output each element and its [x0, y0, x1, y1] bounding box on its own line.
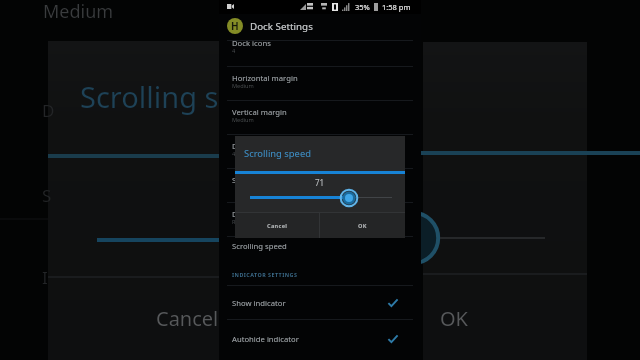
staticText: D: [42, 99, 55, 122]
staticText: INDICATOR SETTINGS: [232, 271, 298, 278]
staticText: Medium: [232, 116, 254, 124]
button[interactable]: Dock opacity: [219, 141, 421, 165]
staticText: Medium: [43, 0, 114, 24]
staticText: 45: [232, 150, 239, 158]
staticText: 71: [315, 177, 325, 188]
staticText: Show indicator: [232, 298, 286, 308]
button[interactable]: H: [219, 14, 421, 38]
button[interactable]: Show indicator: [219, 294, 421, 312]
staticText: Dock position: [232, 209, 282, 219]
button[interactable]: Cancel: [235, 213, 319, 238]
button[interactable]: Dock position: [219, 209, 421, 233]
other: Enabled: [388, 335, 398, 343]
staticText: H: [231, 19, 239, 33]
staticText: Right: [232, 218, 246, 226]
button[interactable]: Vertical margin: [219, 107, 421, 131]
staticText: Autohide indicator: [232, 334, 299, 344]
staticText: Scrolling speed: [244, 147, 311, 160]
button[interactable]: Horizontal margin: [219, 73, 421, 97]
staticText: OK: [358, 222, 367, 230]
staticText: Scrolling speed: [232, 241, 287, 251]
staticText: Medium: [232, 82, 254, 90]
other: Enabled: [388, 299, 398, 307]
button[interactable]: Scrolling speed: [219, 241, 421, 255]
staticText: Scrolling speed: [232, 175, 287, 185]
button[interactable]: Scrolling speed: [219, 175, 421, 189]
staticText: Cancel: [267, 222, 288, 230]
staticText: Vertical margin: [232, 107, 287, 117]
button[interactable]: Dock icons: [219, 38, 421, 62]
staticText: Horizontal margin: [232, 73, 298, 83]
button[interactable]: OK: [320, 213, 405, 238]
staticText: S: [42, 184, 52, 207]
staticText: 1:58 pm: [382, 2, 411, 12]
staticText: Scrolling s: [80, 77, 219, 116]
staticText: Dock opacity: [232, 141, 279, 151]
staticText: 35%: [355, 2, 370, 12]
staticText: OK: [440, 305, 468, 332]
staticText: Cancel: [156, 305, 219, 332]
staticText: pm: [398, 1, 416, 16]
staticText: Dock icons: [232, 38, 271, 48]
staticText: Dock Settings: [250, 20, 313, 33]
staticText: I: [42, 266, 48, 289]
staticText: 4: [232, 47, 236, 55]
button[interactable]: Autohide indicator: [219, 330, 421, 348]
